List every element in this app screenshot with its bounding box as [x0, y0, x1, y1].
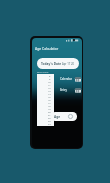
staticText: 20 [48, 111, 51, 114]
staticText: 16 [48, 99, 51, 102]
staticText: 13 [48, 90, 51, 93]
staticText: 24 [48, 123, 51, 125]
staticText: Calendar [60, 77, 72, 81]
staticText: 12 [48, 87, 51, 90]
staticText: Birth Date [37, 70, 49, 73]
staticText: Entry [60, 88, 67, 92]
staticText: 11 [48, 84, 51, 87]
staticText: 8 [49, 75, 51, 78]
staticText: 14 [48, 93, 51, 96]
staticText: Age Calculator [35, 46, 59, 51]
button[interactable]: Entry [60, 87, 81, 93]
staticText: 21 [48, 114, 51, 117]
button[interactable]: 8 [37, 74, 54, 126]
staticText: 9 [49, 78, 51, 81]
staticText: 23 [48, 120, 51, 123]
staticText: 15 [48, 96, 51, 99]
staticText: 18 [48, 105, 51, 108]
staticText: 17 [48, 102, 51, 105]
button[interactable]: Calendar [60, 76, 81, 82]
button[interactable]: Today's Date [37, 58, 79, 69]
staticText: Today's Date [41, 62, 62, 66]
other: Calendar [75, 77, 81, 82]
staticText: 10 [48, 81, 51, 84]
staticText: 19 [48, 108, 51, 111]
button[interactable]: Age [51, 112, 77, 121]
staticText: Age [54, 115, 61, 119]
staticText: Apr 17 2023 [62, 62, 74, 66]
staticText: 22 [48, 117, 51, 120]
other: Entry [75, 88, 81, 93]
